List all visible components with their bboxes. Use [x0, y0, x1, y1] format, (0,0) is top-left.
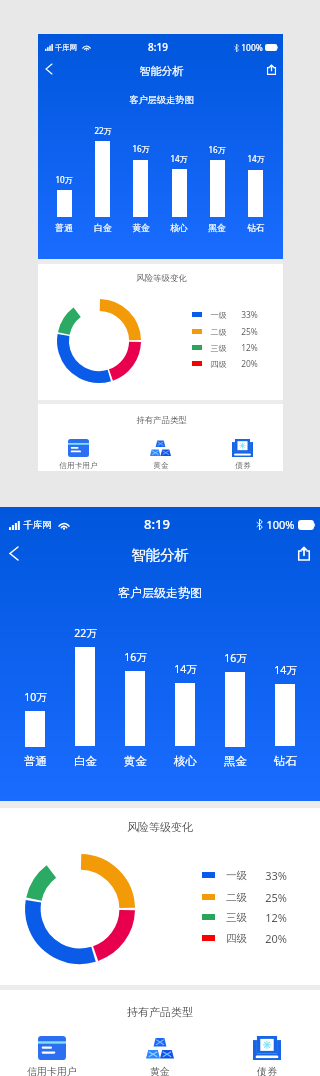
staticText: 核心 [170, 223, 188, 234]
staticText: 33% [265, 868, 287, 883]
staticText: 持有产品类型 [136, 415, 187, 426]
staticText: 千库网 [23, 519, 52, 531]
staticText: 普通 [24, 754, 47, 768]
staticText: 白金 [94, 223, 112, 234]
staticText: 20% [265, 931, 287, 946]
staticText: 25% [265, 890, 287, 905]
staticText: 信用卡用户 [27, 1065, 77, 1076]
staticText: 12% [241, 342, 258, 353]
staticText: 核心 [174, 754, 197, 768]
staticText: 14万 [174, 662, 197, 676]
staticText: 16万 [124, 650, 147, 664]
staticText: 黑金 [208, 223, 226, 234]
staticText: 二级 [210, 327, 227, 337]
staticText: 100% [241, 42, 263, 53]
staticText: 14万 [274, 663, 297, 677]
staticText: 12% [265, 910, 287, 925]
staticText: 22万 [94, 125, 112, 136]
staticText: 信用卡用户 [59, 461, 98, 471]
staticText: 20% [241, 358, 258, 369]
staticText: 16万 [132, 143, 150, 154]
staticText: 黄金 [150, 1065, 170, 1076]
button[interactable]: 三级 [192, 340, 258, 355]
staticText: 三级 [226, 911, 247, 924]
staticText: 33% [241, 309, 258, 320]
staticText: 持有产品类型 [127, 1005, 193, 1019]
staticText: 黄金 [153, 461, 169, 471]
button[interactable]: 四级 [202, 928, 288, 948]
staticText: 三级 [210, 343, 227, 353]
staticText: 10万 [24, 690, 47, 704]
button[interactable]: Back [38, 55, 66, 83]
staticText: 黄金 [132, 223, 150, 234]
button[interactable]: Share [255, 55, 283, 83]
staticText: 风险等级变化 [136, 273, 187, 284]
staticText: 钻石 [247, 223, 265, 234]
staticText: 8:19 [144, 515, 170, 533]
button[interactable]: Back [0, 535, 36, 571]
staticText: 8:19 [148, 40, 168, 54]
button[interactable]: 一级 [192, 307, 258, 322]
staticText: 四级 [210, 359, 227, 369]
button[interactable]: 信用卡用户 [7, 1036, 97, 1076]
staticText: 10万 [55, 174, 73, 185]
staticText: 四级 [226, 932, 247, 945]
staticText: 智能分析 [131, 546, 189, 564]
staticText: 客户层级走势图 [118, 585, 202, 600]
button[interactable]: 信用卡用户 [44, 439, 113, 471]
staticText: 债券 [235, 461, 251, 471]
staticText: 16万 [208, 144, 226, 155]
staticText: 普通 [55, 223, 73, 234]
button[interactable]: Share [284, 535, 320, 571]
button[interactable]: 黄金 [115, 1036, 205, 1076]
staticText: 14万 [170, 153, 188, 164]
button[interactable]: 债券 [208, 439, 277, 471]
button[interactable]: 一级 [202, 865, 288, 885]
staticText: 16万 [224, 651, 247, 665]
button[interactable]: 四级 [192, 356, 258, 371]
staticText: 千库网 [55, 43, 77, 52]
staticText: 智能分析 [139, 64, 184, 78]
staticText: 客户层级走势图 [129, 94, 194, 106]
button[interactable]: 二级 [192, 324, 258, 339]
staticText: 白金 [74, 754, 97, 768]
staticText: 25% [241, 326, 258, 337]
staticText: 22万 [74, 626, 97, 640]
button[interactable]: 黄金 [126, 439, 195, 471]
staticText: 100% [266, 517, 295, 532]
staticText: 14万 [247, 153, 265, 164]
staticText: 黑金 [224, 754, 247, 768]
button[interactable]: 债券 [222, 1036, 312, 1076]
button[interactable]: 二级 [202, 887, 288, 907]
staticText: 一级 [226, 869, 247, 882]
staticText: 黄金 [124, 754, 147, 768]
staticText: 一级 [210, 310, 227, 320]
staticText: 风险等级变化 [127, 820, 193, 834]
staticText: 二级 [226, 891, 247, 904]
button[interactable]: 三级 [202, 907, 288, 927]
staticText: 钻石 [274, 754, 297, 768]
staticText: 债券 [257, 1065, 277, 1076]
